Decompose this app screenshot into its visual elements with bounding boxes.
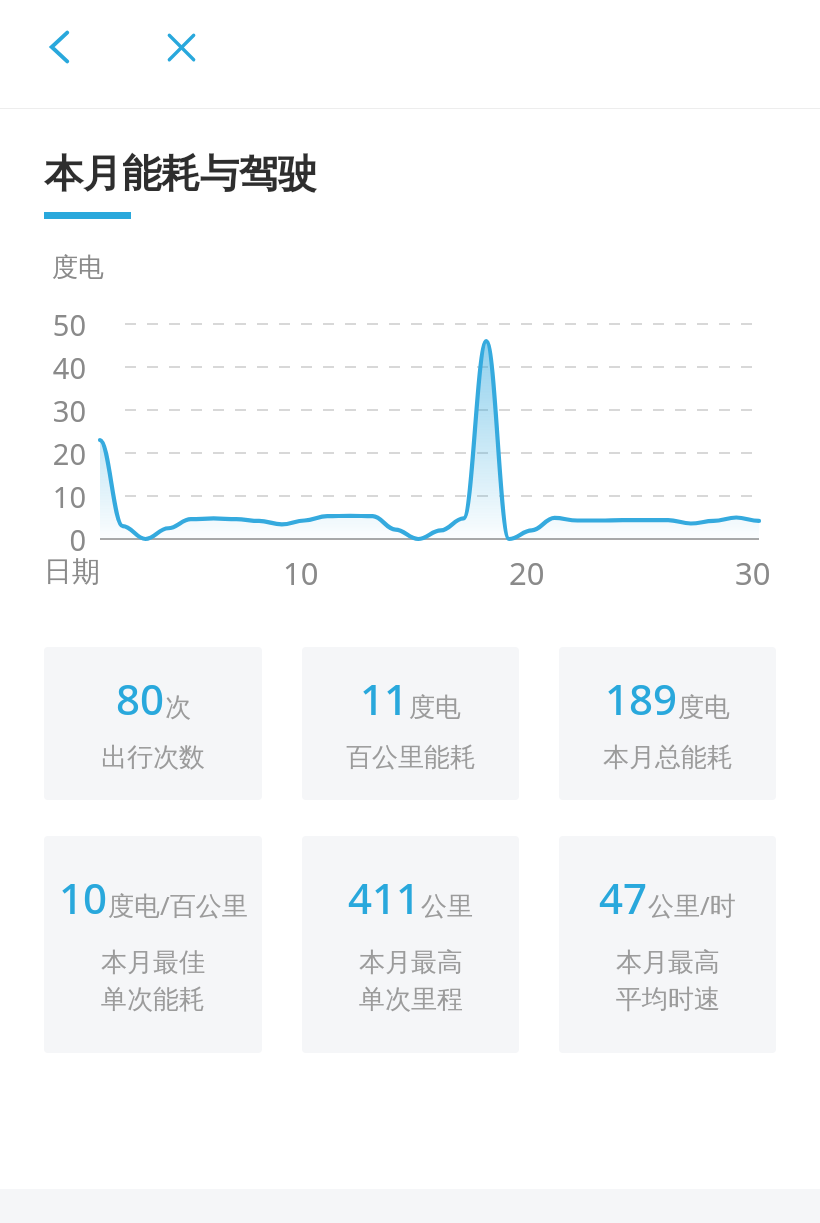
staticText: 10 bbox=[283, 552, 319, 594]
staticText: 10 bbox=[12, 477, 86, 516]
staticText: 百公里能耗 bbox=[346, 741, 476, 774]
staticText: 47 bbox=[599, 869, 648, 926]
staticText: 度电 bbox=[409, 691, 461, 724]
staticText: 189 bbox=[605, 670, 678, 727]
button[interactable]: 11 bbox=[302, 647, 519, 800]
staticText: 本月能耗与驾驶 bbox=[44, 149, 317, 198]
staticText: 本月最佳 bbox=[101, 946, 205, 979]
staticText: 30 bbox=[735, 552, 771, 594]
staticText: 本月最高 bbox=[616, 946, 720, 979]
button[interactable]: Back bbox=[30, 17, 90, 77]
button[interactable]: 47 bbox=[559, 836, 776, 1053]
staticText: 公里 bbox=[421, 890, 473, 923]
button[interactable]: 189 bbox=[559, 647, 776, 800]
staticText: 平均时速 bbox=[616, 983, 720, 1016]
staticText: 0 bbox=[12, 520, 86, 559]
staticText: 30 bbox=[12, 391, 86, 430]
staticText: 单次里程 bbox=[359, 983, 463, 1016]
staticText: 20 bbox=[12, 434, 86, 473]
button[interactable]: Close bbox=[151, 17, 211, 77]
staticText: 本月总能耗 bbox=[603, 741, 733, 774]
staticText: 度电 bbox=[52, 251, 104, 284]
staticText: 50 bbox=[12, 305, 86, 344]
staticText: 40 bbox=[12, 348, 86, 387]
button[interactable]: 411 bbox=[302, 836, 519, 1053]
staticText: 20 bbox=[509, 552, 545, 594]
staticText: 11 bbox=[360, 670, 409, 727]
staticText: 出行次数 bbox=[101, 741, 205, 774]
staticText: 次 bbox=[165, 691, 191, 724]
staticText: 公里/时 bbox=[648, 887, 736, 923]
button[interactable]: 80 bbox=[44, 647, 262, 800]
staticText: 本月最高 bbox=[359, 946, 463, 979]
staticText: 10 bbox=[59, 869, 108, 926]
staticText: 80 bbox=[116, 670, 165, 727]
staticText: 度电/百公里 bbox=[108, 887, 248, 923]
staticText: 日期 bbox=[44, 554, 100, 589]
staticText: 411 bbox=[348, 869, 421, 926]
button[interactable]: 10 bbox=[44, 836, 262, 1053]
staticText: 度电 bbox=[678, 691, 730, 724]
staticText: 单次能耗 bbox=[101, 983, 205, 1016]
